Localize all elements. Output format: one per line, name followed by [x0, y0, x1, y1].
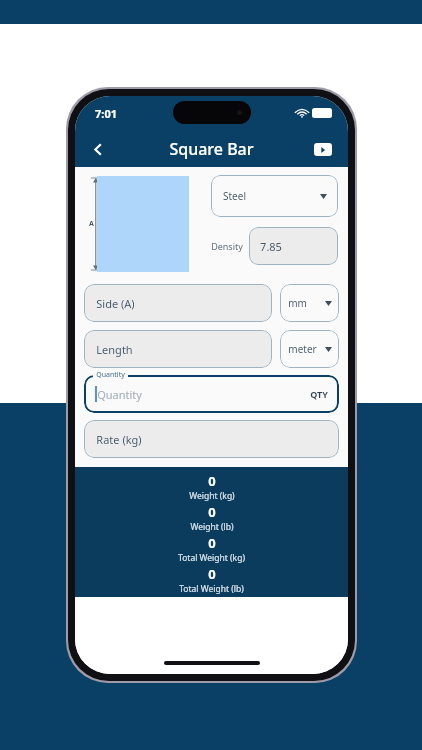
- staticText: meter: [288, 342, 317, 356]
- button[interactable]: Side (A): [84, 284, 272, 322]
- staticText: Weight (kg): [189, 490, 235, 502]
- button[interactable]: meter: [280, 330, 339, 368]
- button[interactable]: YouTube: [308, 134, 338, 164]
- staticText: 0: [208, 503, 216, 521]
- staticText: A: [89, 219, 94, 229]
- staticText: Density: [211, 240, 243, 252]
- staticText: Quantity: [97, 387, 142, 402]
- button[interactable]: Quantity: [84, 375, 339, 413]
- staticText: Total Weight (kg): [178, 552, 245, 564]
- staticText: Steel: [223, 189, 246, 203]
- button[interactable]: Steel: [211, 175, 338, 217]
- button[interactable]: Rate (kg): [84, 420, 339, 458]
- staticText: Quantity: [96, 370, 125, 380]
- staticText: Rate (kg): [96, 432, 142, 447]
- button[interactable]: Back: [81, 132, 115, 166]
- staticText: QTY: [310, 388, 328, 400]
- staticText: Total Weight (lb): [179, 583, 244, 595]
- button[interactable]: 7.85: [249, 227, 338, 265]
- staticText: Square Bar: [169, 138, 254, 160]
- staticText: 7.85: [260, 239, 282, 254]
- staticText: Side (A): [96, 296, 135, 311]
- staticText: 0: [208, 565, 216, 583]
- staticText: Length: [96, 342, 133, 357]
- staticText: Weight (lb): [190, 521, 234, 533]
- staticText: 0: [208, 472, 216, 490]
- button[interactable]: mm: [280, 284, 339, 322]
- staticText: mm: [288, 296, 307, 310]
- staticText: 0: [208, 534, 216, 552]
- button[interactable]: Length: [84, 330, 272, 368]
- staticText: 7:01: [95, 106, 117, 121]
